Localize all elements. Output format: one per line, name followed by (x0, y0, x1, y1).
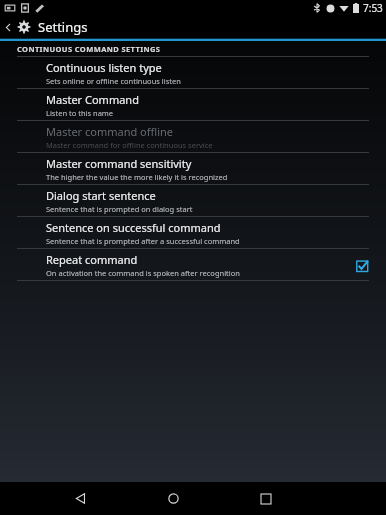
button[interactable]: Continuous listen type (0, 57, 386, 88)
staticText: On activation the command is spoken afte… (46, 268, 240, 278)
staticText: 7:53 (363, 1, 383, 15)
button[interactable]: Home (153, 482, 193, 515)
staticText: Sentence that is prompted on dialog star… (46, 204, 193, 214)
staticText: Master Command (46, 92, 139, 107)
button: Master command offline (0, 121, 386, 152)
staticText: Dialog start sentence (46, 188, 156, 203)
staticText: Sentence on successful command (46, 220, 221, 235)
button[interactable]: Recent apps (246, 482, 286, 515)
button[interactable]: Master command sensitivity (0, 153, 386, 184)
staticText: Listen to this name (46, 108, 114, 118)
staticText: Continuous listen type (46, 60, 162, 75)
staticText: Settings (38, 18, 88, 36)
button[interactable]: Sentence on successful command (0, 217, 386, 248)
staticText: Sets online or offline continuous listen (46, 76, 181, 86)
button[interactable]: Repeat command checkbox (352, 255, 372, 275)
staticText: Master command offline (46, 124, 173, 139)
button[interactable]: Master Command (0, 89, 386, 120)
staticText: Repeat command (46, 252, 138, 267)
button[interactable]: Back (60, 482, 100, 515)
staticText: Master command sensitivity (46, 156, 192, 171)
button[interactable]: Repeat command (0, 249, 386, 280)
staticText: Sentence that is prompted after a succes… (46, 236, 240, 246)
staticText: Master command for offline continuous se… (46, 140, 213, 150)
button[interactable]: Back to Settings (0, 18, 96, 36)
staticText: CONTINUOUS COMMAND SETTINGS (17, 44, 161, 54)
staticText: The higher the value the more likely it … (46, 172, 228, 182)
button[interactable]: Dialog start sentence (0, 185, 386, 216)
